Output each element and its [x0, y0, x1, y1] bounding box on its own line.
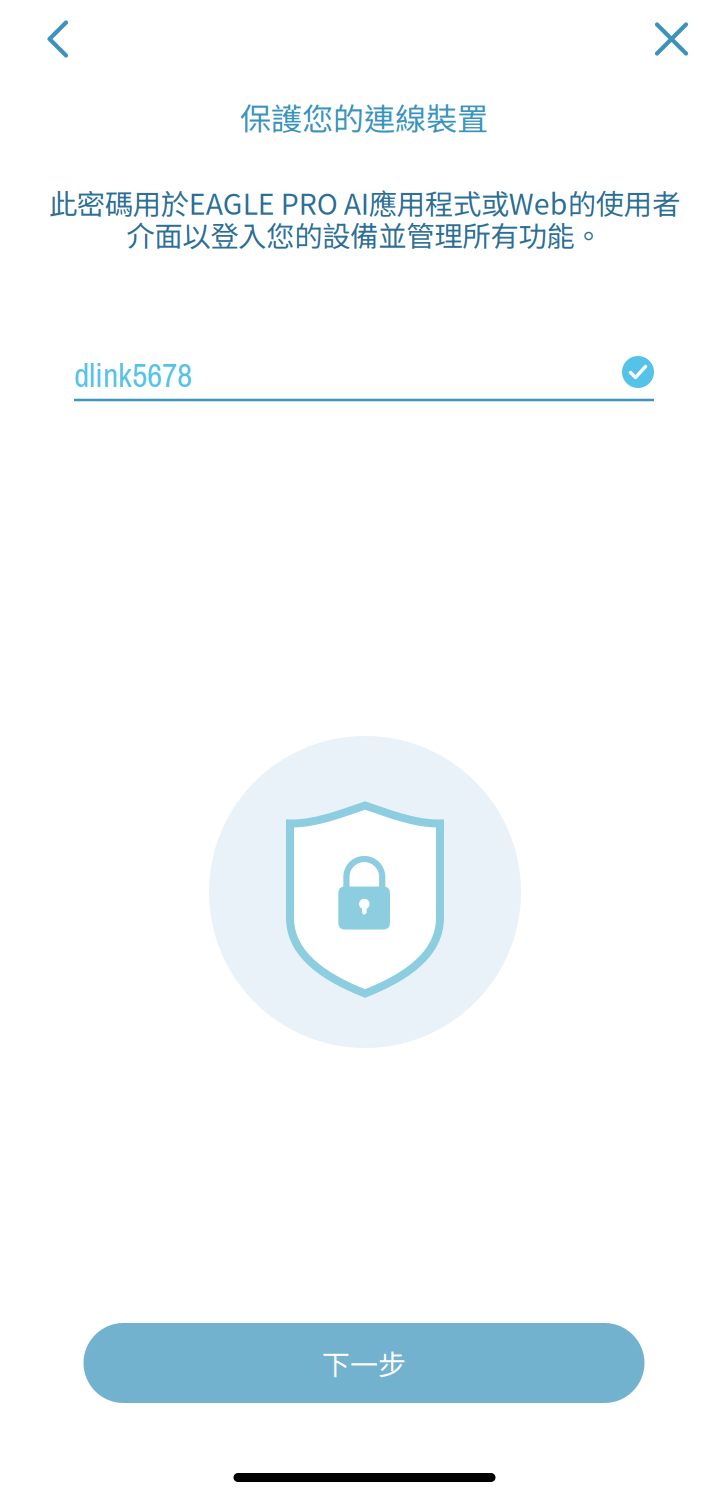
button[interactable]: 下一步: [83, 1323, 644, 1403]
staticText: dlink5678: [74, 353, 192, 397]
staticText: 保護您的連線裝置: [240, 94, 488, 139]
button[interactable]: Close: [634, 2, 708, 76]
button[interactable]: Device password: [74, 346, 654, 398]
staticText: 此密碼用於EAGLE PRO AI應用程式或Web的使用者介面以登入您的設備並管…: [48, 182, 679, 255]
staticText: 下一步: [322, 1343, 406, 1383]
button[interactable]: Back: [20, 2, 94, 76]
